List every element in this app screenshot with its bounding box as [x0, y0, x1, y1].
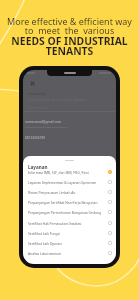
staticText: Sertifikat Laik Fungsi [28, 231, 106, 235]
staticText: Sertifikat Laik Operasi [28, 241, 106, 245]
staticText: Informasi IMB, SLF, dan IMB, PBG, Rinci [28, 170, 106, 174]
staticText: More effective & efficient way [0, 15, 139, 27]
staticText: Perpanjangan Sertifikat Nan Kerja Bangun… [28, 200, 106, 204]
button[interactable]: Informasi IMB, SLF, dan IMB, PBG, Rinci [23, 167, 116, 177]
staticText: NEEDS OF INDUSTRIAL [0, 34, 139, 48]
staticText: Formulir [28, 91, 46, 97]
button[interactable]: Sertifikat Laik Fungsi [23, 228, 116, 238]
button[interactable]: Rintas Penyesuaian Limbah Air [23, 187, 116, 197]
button[interactable]: Layanan Implementasi & Layanan Spesimen [23, 177, 116, 187]
button[interactable]: Sertifikat Hak Pemasukan Instalasi [23, 218, 116, 228]
staticText: Analisa Laboratorium [28, 251, 106, 255]
button[interactable]: Perpanjangan Sertifikat Nan Kerja Bangun… [23, 197, 116, 207]
staticText: Layanan Implementasi & Layanan Spesimen [28, 180, 106, 184]
staticText: Perpanjangan Permohonan Bangunan Gedung … [28, 210, 106, 214]
button[interactable]: Analisa Laboratorium [23, 248, 116, 258]
button[interactable]: Sertifikat Laik Operasi [23, 238, 116, 248]
button[interactable]: Close [28, 79, 36, 87]
staticText: 08123456789 [25, 136, 46, 140]
staticText: TENANTS [0, 44, 139, 58]
button[interactable]: Perpanjangan Permohonan Bangunan Gedung … [23, 207, 116, 217]
staticText: Silakan lengkapi data diri anda di bawah… [28, 98, 87, 102]
staticText: Layanan [28, 164, 48, 170]
staticText: Rintas Penyesuaian Limbah Air [28, 190, 106, 194]
staticText: Sertifikat Hak Pemasukan Instalasi [28, 221, 106, 225]
staticText: nama.email@gmail.com [25, 120, 62, 124]
staticText: to meet the various [0, 24, 139, 36]
